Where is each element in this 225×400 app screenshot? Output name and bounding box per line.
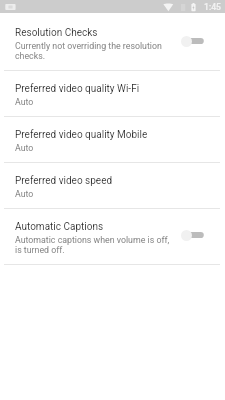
button[interactable]: Preferred video quality Wi-Fi xyxy=(0,71,225,116)
button[interactable]: Toggle xyxy=(183,33,207,49)
staticText: Preferred video quality Wi-Fi xyxy=(15,83,140,95)
staticText: Currently not overriding the resolution … xyxy=(15,41,180,61)
button[interactable]: Resolution Checks xyxy=(0,13,225,70)
button[interactable]: Preferred video speed xyxy=(0,163,225,208)
staticText: Automatic captions when volume is off, i… xyxy=(15,235,170,255)
staticText: Auto xyxy=(15,97,205,107)
staticText: Resolution Checks xyxy=(15,27,98,39)
staticText: Auto xyxy=(15,189,205,199)
staticText: Automatic Captions xyxy=(15,221,104,233)
staticText: Auto xyxy=(15,143,205,153)
button[interactable]: Preferred video quality Mobile xyxy=(0,117,225,162)
button[interactable]: Automatic Captions xyxy=(0,209,225,264)
button[interactable]: Toggle xyxy=(183,227,207,243)
staticText: 1:45 xyxy=(204,2,221,12)
staticText: Preferred video speed xyxy=(15,175,113,187)
staticText: Preferred video quality Mobile xyxy=(15,129,148,141)
